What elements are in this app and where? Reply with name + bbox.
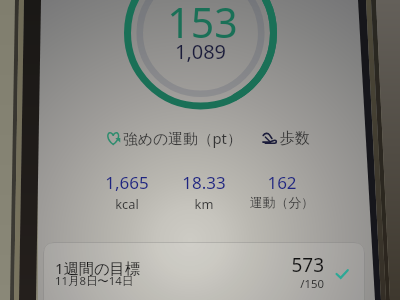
button[interactable]: 1週間の目標 (43, 242, 365, 300)
staticText: 573 (254, 252, 324, 278)
staticText: kcal (77, 195, 177, 212)
staticText: 強めの運動（pt） (123, 128, 242, 148)
staticText: 18.33 (154, 171, 254, 194)
staticText: /150 (254, 276, 324, 292)
staticText: 153 (142, 0, 263, 50)
staticText: 歩数 (280, 129, 310, 148)
staticText: 1,665 (77, 171, 177, 194)
staticText: 1週間の目標 (55, 258, 140, 279)
staticText: 162 (232, 171, 332, 194)
staticText: km (154, 195, 254, 212)
staticText: 11月8日〜14日 (55, 273, 134, 289)
staticText: 1,089 (140, 38, 261, 65)
other: Goal achieved (334, 266, 350, 282)
staticText: 運動（分） (232, 195, 332, 211)
